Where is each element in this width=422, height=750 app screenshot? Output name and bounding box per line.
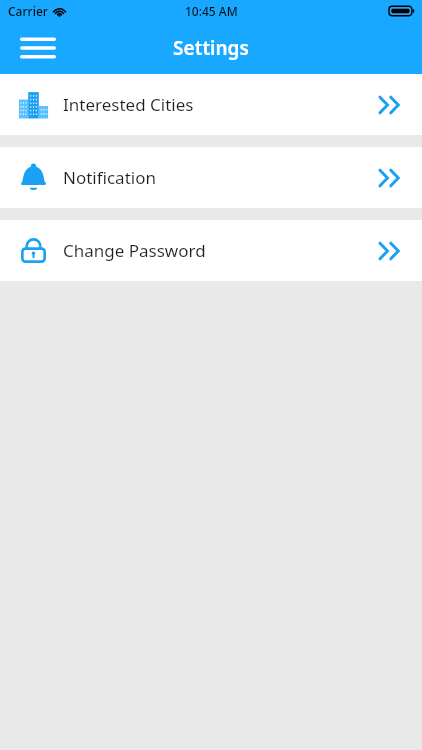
button[interactable]: Menu bbox=[14, 28, 62, 68]
staticText: Notification bbox=[63, 166, 156, 189]
staticText: Interested Cities bbox=[63, 93, 194, 116]
button[interactable]: Interested Cities bbox=[0, 74, 422, 135]
button[interactable]: Change Password bbox=[0, 220, 422, 281]
button[interactable]: Notification bbox=[0, 147, 422, 208]
staticText: Carrier bbox=[8, 3, 48, 19]
staticText: Settings bbox=[173, 35, 249, 61]
staticText: 10:45 AM bbox=[185, 3, 238, 19]
staticText: Change Password bbox=[63, 239, 206, 262]
